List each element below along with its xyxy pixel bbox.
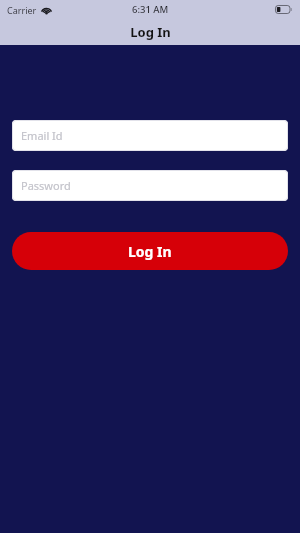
staticText: Log In <box>130 23 171 41</box>
staticText: Email Id <box>21 128 63 143</box>
staticText: Carrier <box>7 4 37 16</box>
button[interactable]: Email Id <box>12 120 288 151</box>
staticText: Log In <box>128 242 172 261</box>
button[interactable]: Log In <box>12 232 288 270</box>
button[interactable]: Password <box>12 170 288 201</box>
staticText: Password <box>21 178 71 193</box>
staticText: 6:31 AM <box>132 3 169 16</box>
